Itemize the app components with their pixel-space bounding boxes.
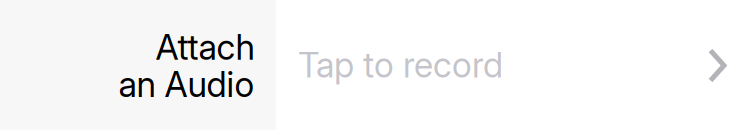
button[interactable]: Attach an Audio xyxy=(0,0,750,130)
staticText: Tap to record xyxy=(298,44,503,86)
staticText: Attach an Audio xyxy=(118,26,254,105)
